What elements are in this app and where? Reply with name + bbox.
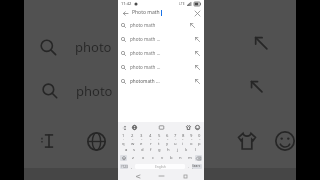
button[interactable]: 4 [146,138,155,146]
staticText: English [155,165,166,169]
button[interactable]: c [148,154,158,162]
button[interactable]: photo math solver scanner [118,60,204,74]
button[interactable]: 1 [119,138,128,146]
staticText: n [179,155,182,161]
button[interactable]: Back [134,172,142,180]
button[interactable]: 8 [179,138,187,146]
button[interactable]: 9 [187,138,195,146]
button[interactable]: Backspace [195,155,202,161]
button[interactable]: l [191,146,200,154]
button[interactable]: Space [135,164,185,169]
button[interactable]: 6 [163,133,171,138]
staticText: o [190,141,193,146]
staticText: t [158,141,160,146]
staticText: 6 [167,138,169,141]
staticText: photomath app [130,78,161,84]
staticText: 2 [131,133,134,138]
staticText: j [177,147,179,153]
button[interactable]: 2 [128,138,137,146]
button[interactable]: d [138,146,146,154]
button[interactable]: photo math solver [118,32,204,46]
button[interactable]: 3 [137,133,146,138]
button[interactable]: Emoji [274,128,296,154]
staticText: photo [75,38,112,56]
button[interactable]: Insert suggestion [188,21,196,29]
button[interactable]: b [167,154,176,162]
button[interactable]: j [173,146,182,154]
staticText: 5 [158,133,161,138]
button[interactable]: Insert suggestion [193,63,201,71]
button[interactable]: photo [24,38,118,56]
button[interactable]: Home [157,172,165,180]
button[interactable]: n [176,154,185,162]
staticText: photo math [130,22,156,28]
staticText: r [150,141,152,146]
button[interactable]: 0 [195,133,203,138]
button[interactable]: 2 [128,133,137,138]
staticText: x [142,155,145,161]
button[interactable]: GIF [158,124,165,131]
button[interactable]: Clear search [193,9,201,17]
button[interactable]: 5 [155,138,163,146]
staticText: u [174,141,177,146]
button[interactable]: Insert suggestion [246,76,266,96]
button[interactable]: Shift [120,155,127,161]
button[interactable]: 6 [163,138,171,146]
button[interactable]: Insert suggestion [193,49,201,57]
button[interactable]: 5 [155,133,163,138]
button[interactable]: photo math [118,18,204,32]
staticText: i [182,141,184,146]
button[interactable]: 7 [171,138,179,146]
button[interactable]: z [128,154,138,162]
button[interactable]: Back [121,9,129,17]
button[interactable]: a [122,146,130,154]
staticText: b [170,155,173,161]
staticText: 3 [141,138,143,141]
button[interactable]: Stickers [234,128,260,154]
button[interactable]: Change language [131,124,138,131]
staticText: Photo math [132,9,160,16]
button[interactable]: Emoji [194,124,201,131]
button[interactable]: f [146,146,155,154]
staticText: 7 [174,133,177,138]
button[interactable]: m [185,154,194,162]
button[interactable]: g [155,146,164,154]
staticText: l [195,147,197,153]
button[interactable]: Search [192,164,202,169]
button[interactable]: Insert suggestion [250,32,272,54]
button[interactable]: h [164,146,173,154]
button[interactable]: Text editing [121,124,128,131]
staticText: w [131,141,135,146]
staticText: 1 [122,133,125,138]
button[interactable]: Insert suggestion [193,35,201,43]
button[interactable]: Period [186,163,191,170]
button[interactable]: Insert suggestion [193,77,201,85]
button[interactable]: s [130,146,138,154]
button[interactable]: 7 [171,133,179,138]
button[interactable]: 9 [187,133,195,138]
button[interactable]: photom [24,82,118,100]
button[interactable]: x [138,154,148,162]
staticText: 3 [140,133,143,138]
button[interactable]: 8 [179,133,187,138]
button[interactable]: Change language [84,129,108,153]
staticText: d [141,147,144,153]
button[interactable]: ?123 [120,164,128,169]
button[interactable]: photomath app [118,74,204,88]
staticText: 6 [166,133,169,138]
button[interactable]: v [158,154,167,162]
button[interactable]: Text cursor [38,130,60,152]
button[interactable]: Comma [129,163,134,170]
button[interactable]: Recents [181,172,189,180]
button[interactable]: 3 [137,138,146,146]
staticText: z [132,155,134,161]
button[interactable]: photo math solver step by step [118,46,204,60]
button[interactable]: 4 [146,133,155,138]
button[interactable]: k [182,146,191,154]
button[interactable]: 0 [195,138,203,146]
button[interactable]: 1 [119,133,128,138]
staticText: photo math solver step by step [130,50,161,56]
button[interactable]: Stickers [185,124,192,131]
staticText: ?123 [121,165,128,169]
staticText: q [122,141,125,146]
